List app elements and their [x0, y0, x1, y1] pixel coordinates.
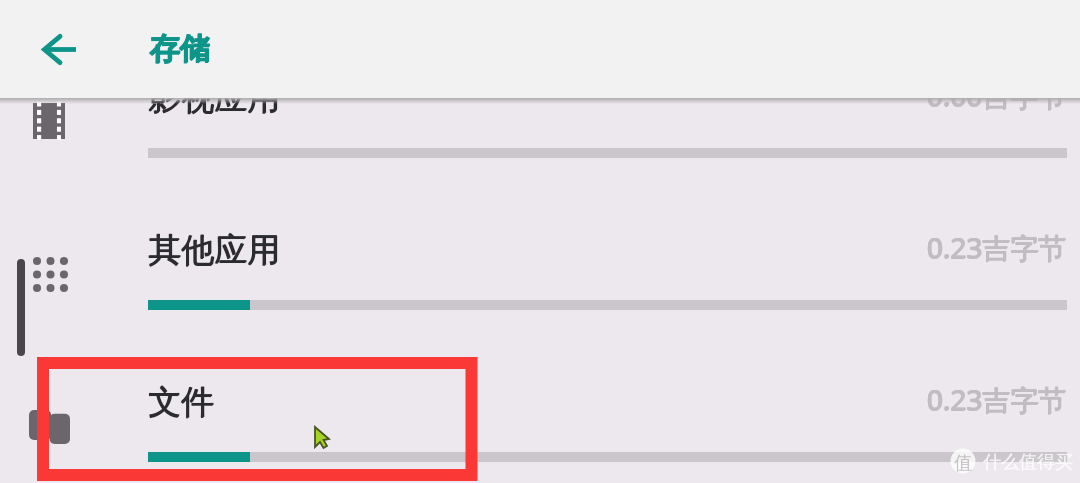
staticText: 文件 — [148, 382, 214, 424]
staticText: 影视应用 — [148, 78, 280, 120]
staticText: 值 — [954, 452, 972, 475]
staticText: 文件 — [149, 381, 215, 423]
button[interactable]: 影视应用 — [0, 60, 1080, 212]
staticText: 0.23吉字节 — [700, 228, 1066, 266]
staticText: 0.23吉字节 — [700, 380, 1066, 418]
staticText: 其他应用 — [148, 229, 280, 271]
button[interactable]: 文件 — [0, 364, 1080, 483]
staticText: 0.00吉字节 — [701, 76, 1067, 114]
staticText: 文件 — [148, 381, 214, 423]
button[interactable]: 其他应用 — [0, 212, 1080, 364]
staticText: 存储 — [149, 30, 209, 68]
staticText: 0.23吉字节 — [701, 228, 1067, 266]
staticText: 0.23吉字节 — [700, 381, 1066, 419]
staticText: 影视应用 — [149, 77, 281, 119]
staticText: 0.00吉字节 — [700, 76, 1066, 114]
staticText: 0.23吉字节 — [700, 229, 1066, 267]
staticText: 影视应用 — [148, 77, 280, 119]
staticText: 0.23吉字节 — [701, 380, 1067, 418]
button[interactable]: 返回 — [24, 24, 94, 74]
staticText: 其他应用 — [148, 230, 280, 272]
staticText: 0.00吉字节 — [700, 77, 1066, 115]
staticText: 存储 — [150, 30, 210, 68]
staticText: 存储 — [149, 31, 209, 69]
staticText: 什么值得买 — [983, 451, 1073, 474]
staticText: 其他应用 — [149, 229, 281, 271]
